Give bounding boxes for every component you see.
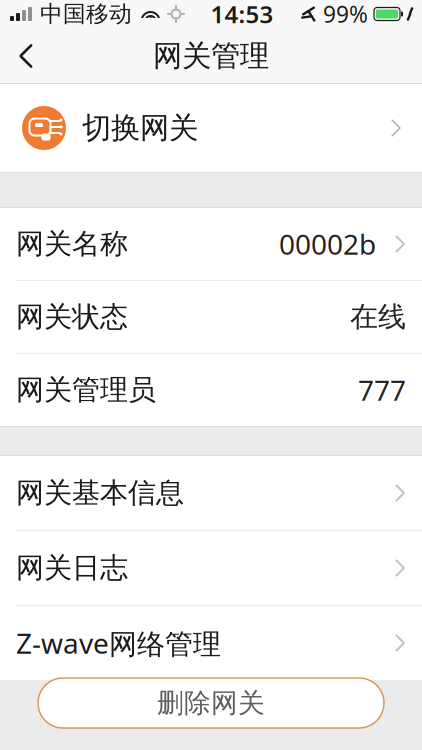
staticText: 网关基本信息 xyxy=(16,476,184,510)
staticText: 777 xyxy=(358,371,406,409)
staticText: 14:53 xyxy=(210,0,273,30)
staticText: 99% xyxy=(323,0,368,29)
button[interactable]: 切换网关 xyxy=(0,84,422,172)
button[interactable]: 删除网关 xyxy=(38,678,384,728)
staticText: 网关管理员 xyxy=(16,373,156,407)
button[interactable]: 网关名称 xyxy=(0,208,422,280)
staticText: Z-wave网络管理 xyxy=(16,624,221,662)
button[interactable]: Back xyxy=(0,28,52,84)
staticText: 网关管理 xyxy=(153,38,269,74)
button[interactable]: 网关基本信息 xyxy=(0,456,422,530)
staticText: 中国移动 xyxy=(40,0,132,28)
staticText: 网关日志 xyxy=(16,551,128,585)
staticText: 00002b xyxy=(279,225,376,263)
button[interactable]: 网关日志 xyxy=(0,531,422,605)
staticText: 网关状态 xyxy=(16,300,128,334)
staticText: 网关名称 xyxy=(16,227,128,261)
staticText: 删除网关 xyxy=(157,687,265,719)
button[interactable]: Z-wave网络管理 xyxy=(0,606,422,680)
staticText: 在线 xyxy=(350,300,406,334)
staticText: 切换网关 xyxy=(82,110,198,146)
